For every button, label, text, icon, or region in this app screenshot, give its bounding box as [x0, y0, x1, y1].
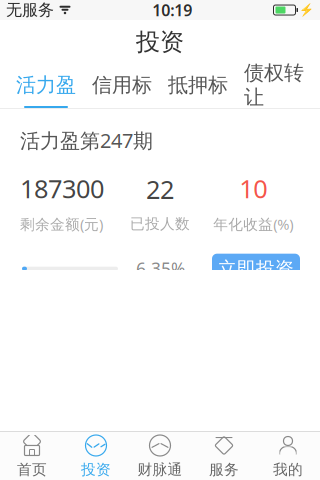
staticText: 立即投资: [218, 257, 294, 280]
staticText: 22: [146, 172, 174, 206]
staticText: 10:19: [152, 0, 192, 21]
staticText: ⚡: [299, 3, 314, 17]
staticText: 已投人数: [130, 215, 190, 233]
staticText: 我的: [273, 460, 303, 478]
button[interactable]: 立即投资: [212, 254, 300, 284]
staticText: 服务: [209, 460, 239, 478]
staticText: 年化收益(%): [213, 214, 293, 234]
staticText: 信用标: [92, 73, 152, 97]
button[interactable]: 服务: [192, 432, 256, 480]
staticText: 活力盈第247期: [20, 127, 153, 154]
button[interactable]: 抵押标: [160, 64, 236, 108]
button[interactable]: 债权转让: [236, 64, 312, 108]
staticText: 无服务: [6, 0, 54, 20]
button[interactable]: 我的: [256, 432, 320, 480]
staticText: 投资: [136, 27, 184, 57]
button[interactable]: 财脉通: [128, 432, 192, 480]
staticText: 抵押标: [168, 73, 228, 97]
staticText: 187300: [20, 172, 104, 205]
staticText: 首页: [17, 460, 47, 478]
button[interactable]: 首页: [0, 432, 64, 480]
staticText: 债权转让: [244, 60, 304, 109]
button[interactable]: 活力盈: [8, 64, 84, 108]
button[interactable]: 投资: [64, 432, 128, 480]
staticText: 活力盈: [16, 73, 76, 97]
staticText: 财脉通: [137, 460, 182, 478]
button[interactable]: 信用标: [84, 64, 160, 108]
staticText: 6.35%: [136, 257, 185, 280]
staticText: 投资: [81, 460, 111, 478]
staticText: 10: [239, 172, 267, 205]
staticText: 剩余金额(元): [20, 214, 103, 234]
